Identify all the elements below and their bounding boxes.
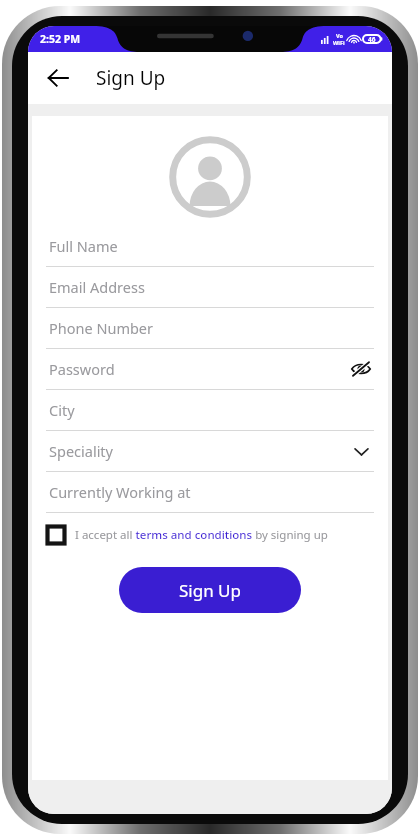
staticText: WiFi <box>333 39 345 46</box>
staticText: Sign Up <box>96 65 166 91</box>
button[interactable]: Back <box>38 58 78 98</box>
button[interactable]: Password <box>46 349 374 390</box>
staticText: 46 <box>368 35 376 44</box>
staticText: Phone Number <box>49 318 374 338</box>
staticText: I accept all terms and conditions by sig… <box>75 527 328 543</box>
button[interactable]: Phone Number <box>46 308 374 349</box>
staticText: Email Address <box>49 277 374 297</box>
button[interactable]: Email Address <box>46 267 374 308</box>
button[interactable]: Sign Up <box>119 567 301 613</box>
button[interactable]: Currently Working at <box>46 472 374 513</box>
button[interactable]: Open speciality list <box>348 438 374 464</box>
staticText: Currently Working at <box>49 482 374 502</box>
staticText: Sign Up <box>179 579 241 602</box>
button[interactable]: I accept all terms and conditions by sig… <box>46 525 374 545</box>
button[interactable]: Speciality <box>46 431 374 472</box>
button[interactable]: Toggle password visibility <box>348 356 374 382</box>
staticText: Vo <box>336 32 343 39</box>
staticText: Speciality <box>49 441 348 461</box>
staticText: Password <box>49 359 348 379</box>
button[interactable]: City <box>46 390 374 431</box>
staticText: Full Name <box>49 236 374 256</box>
staticText: 2:52 PM <box>40 32 81 46</box>
staticText: City <box>49 400 374 420</box>
button[interactable]: Full Name <box>46 226 374 267</box>
